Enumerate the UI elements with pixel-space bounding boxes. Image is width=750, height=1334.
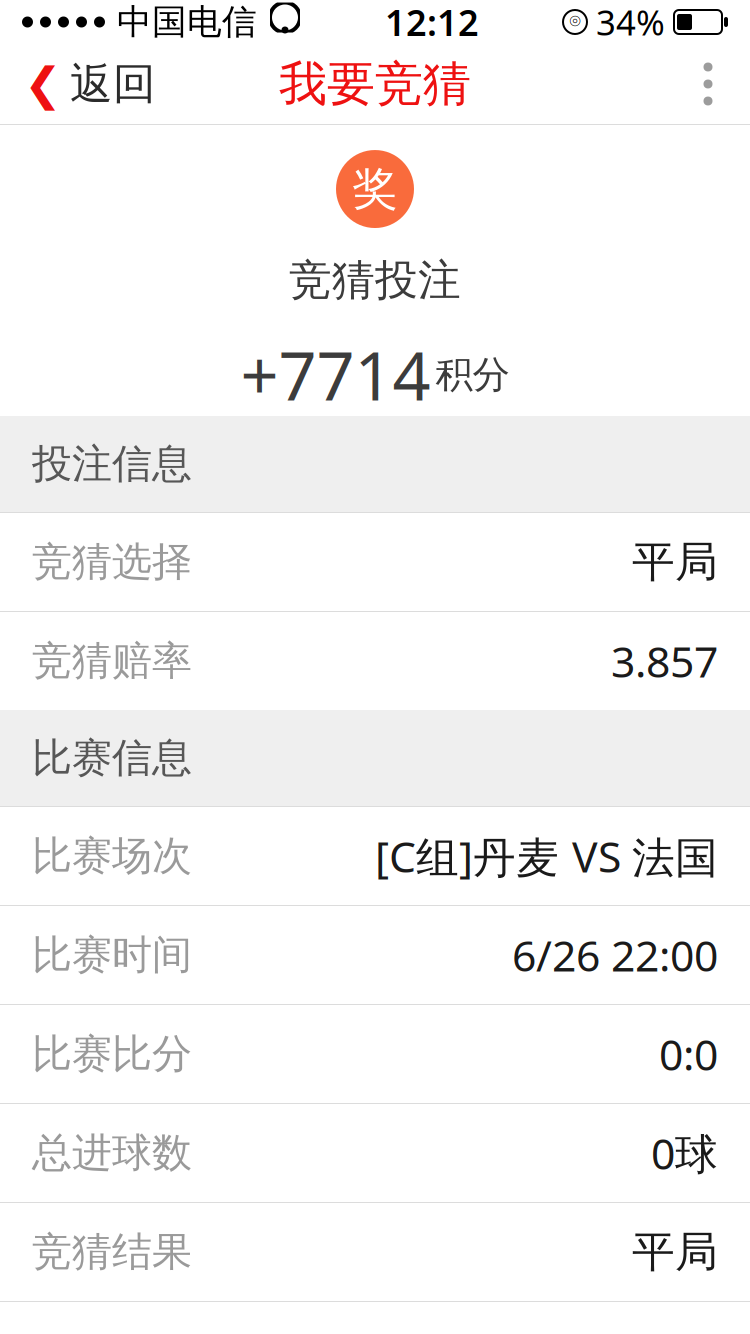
staticText: 奖 [352,161,397,217]
button[interactable]: 比赛时间 [0,906,750,1004]
staticText: 平局 [632,536,718,588]
staticText: 返回 [70,58,156,110]
staticText: 比赛时间 [32,930,192,979]
button[interactable]: 比赛比分 [0,1005,750,1103]
staticText: 我要竞猜 [279,54,471,113]
staticText: 中国电信 [117,1,257,43]
staticText: 积分 [435,352,509,398]
button[interactable]: 竞猜赔率 [0,612,750,710]
staticText: 总进球数 [32,1128,192,1177]
staticText: 平局 [632,1226,718,1278]
staticText: 比赛信息 [32,733,192,782]
staticText: 竞猜选择 [32,537,192,586]
staticText: [C组]丹麦 VS 法国 [375,828,718,884]
staticText: 比赛比分 [32,1029,192,1078]
staticText: 0:0 [659,1026,718,1082]
staticText: 比赛场次 [32,831,192,880]
staticText: ⌾ [569,13,580,31]
staticText: 12:12 [385,0,479,46]
button[interactable]: 竞猜选择 [0,513,750,611]
staticText: 6/26 22:00 [512,927,718,983]
staticText: 3.857 [611,633,718,689]
staticText: 竞猜赔率 [32,636,192,685]
staticText: 投注信息 [32,439,192,488]
button[interactable]: 更多 [666,44,750,124]
button[interactable]: 比赛场次 [0,807,750,905]
staticText: 0球 [651,1125,718,1181]
staticText: +7714 [240,330,430,419]
staticText: ❮ [24,58,62,110]
staticText: 竞猜投注 [289,254,461,306]
staticText: 竞猜结果 [32,1227,192,1276]
staticText: 34% [596,0,665,45]
button[interactable]: ❮ [0,44,180,124]
button[interactable]: 总进球数 [0,1104,750,1202]
button[interactable]: 竞猜结果 [0,1203,750,1301]
